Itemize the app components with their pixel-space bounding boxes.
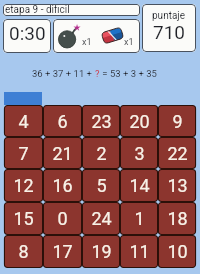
staticText: 0 (57, 208, 68, 229)
staticText: 12 (13, 175, 34, 196)
staticText: etapa 9 - dificil (5, 4, 70, 16)
button[interactable]: 16 (43, 169, 82, 202)
button[interactable]: etapa 9 - dificil (3, 4, 140, 16)
staticText: 3 (134, 143, 145, 164)
staticText: 9 (172, 111, 183, 132)
staticText: 20 (129, 111, 150, 132)
button[interactable]: 12 (4, 169, 43, 202)
staticText: 7 (18, 143, 29, 164)
button[interactable]: 23 (82, 105, 120, 137)
staticText: 10 (167, 241, 188, 262)
staticText: 23 (91, 111, 112, 132)
staticText: x1 (82, 37, 92, 48)
staticText: 13 (167, 175, 188, 196)
button[interactable]: 19 (82, 235, 120, 268)
staticText: 36 + 37 + 11 + (32, 68, 95, 79)
staticText: = 53 + 3 + 35 (100, 68, 157, 79)
button[interactable]: 21 (43, 137, 82, 169)
staticText: 14 (129, 175, 150, 196)
staticText: 1 (134, 208, 145, 229)
button[interactable]: Bomb power up (57, 24, 81, 48)
staticText: 18 (167, 208, 188, 229)
staticText: x1 (124, 37, 134, 48)
staticText: 16 (52, 175, 73, 196)
button[interactable]: 2 (82, 137, 120, 169)
button[interactable]: Eraser power up (100, 26, 125, 45)
staticText: ? (95, 68, 100, 79)
staticText: 21 (52, 143, 73, 164)
button[interactable]: 0 (43, 202, 82, 235)
button[interactable]: 20 (120, 105, 158, 137)
button[interactable]: 1 (120, 202, 158, 235)
staticText: 5 (96, 175, 107, 196)
button[interactable]: 6 (43, 105, 82, 137)
staticText: 17 (52, 241, 73, 262)
button[interactable]: 15 (4, 202, 43, 235)
button[interactable]: 3 (120, 137, 158, 169)
staticText: 8 (18, 241, 29, 262)
staticText: puntaje (152, 10, 186, 22)
button[interactable]: 11 (120, 235, 158, 268)
button[interactable]: 7 (4, 137, 43, 169)
button[interactable]: 24 (82, 202, 120, 235)
button[interactable]: 8 (4, 235, 43, 268)
staticText: 11 (129, 241, 150, 262)
staticText: 24 (91, 208, 112, 229)
button[interactable]: 4 (4, 105, 43, 137)
staticText: 710 (153, 21, 186, 43)
button[interactable]: 9 (158, 105, 196, 137)
button[interactable]: 13 (158, 169, 196, 202)
button[interactable]: 17 (43, 235, 82, 268)
staticText: 4 (18, 111, 29, 132)
staticText: 22 (167, 143, 188, 164)
staticText: 2 (96, 143, 107, 164)
button[interactable]: 22 (158, 137, 196, 169)
button[interactable]: 14 (120, 169, 158, 202)
button[interactable]: puntaje (142, 4, 196, 52)
button[interactable]: 5 (82, 169, 120, 202)
staticText: 15 (13, 208, 34, 229)
button[interactable]: 0:30 (3, 19, 51, 53)
staticText: 6 (57, 111, 68, 132)
staticText: 0:30 (9, 22, 46, 44)
button[interactable]: 10 (158, 235, 196, 268)
staticText: 19 (91, 241, 112, 262)
button[interactable]: 18 (158, 202, 196, 235)
